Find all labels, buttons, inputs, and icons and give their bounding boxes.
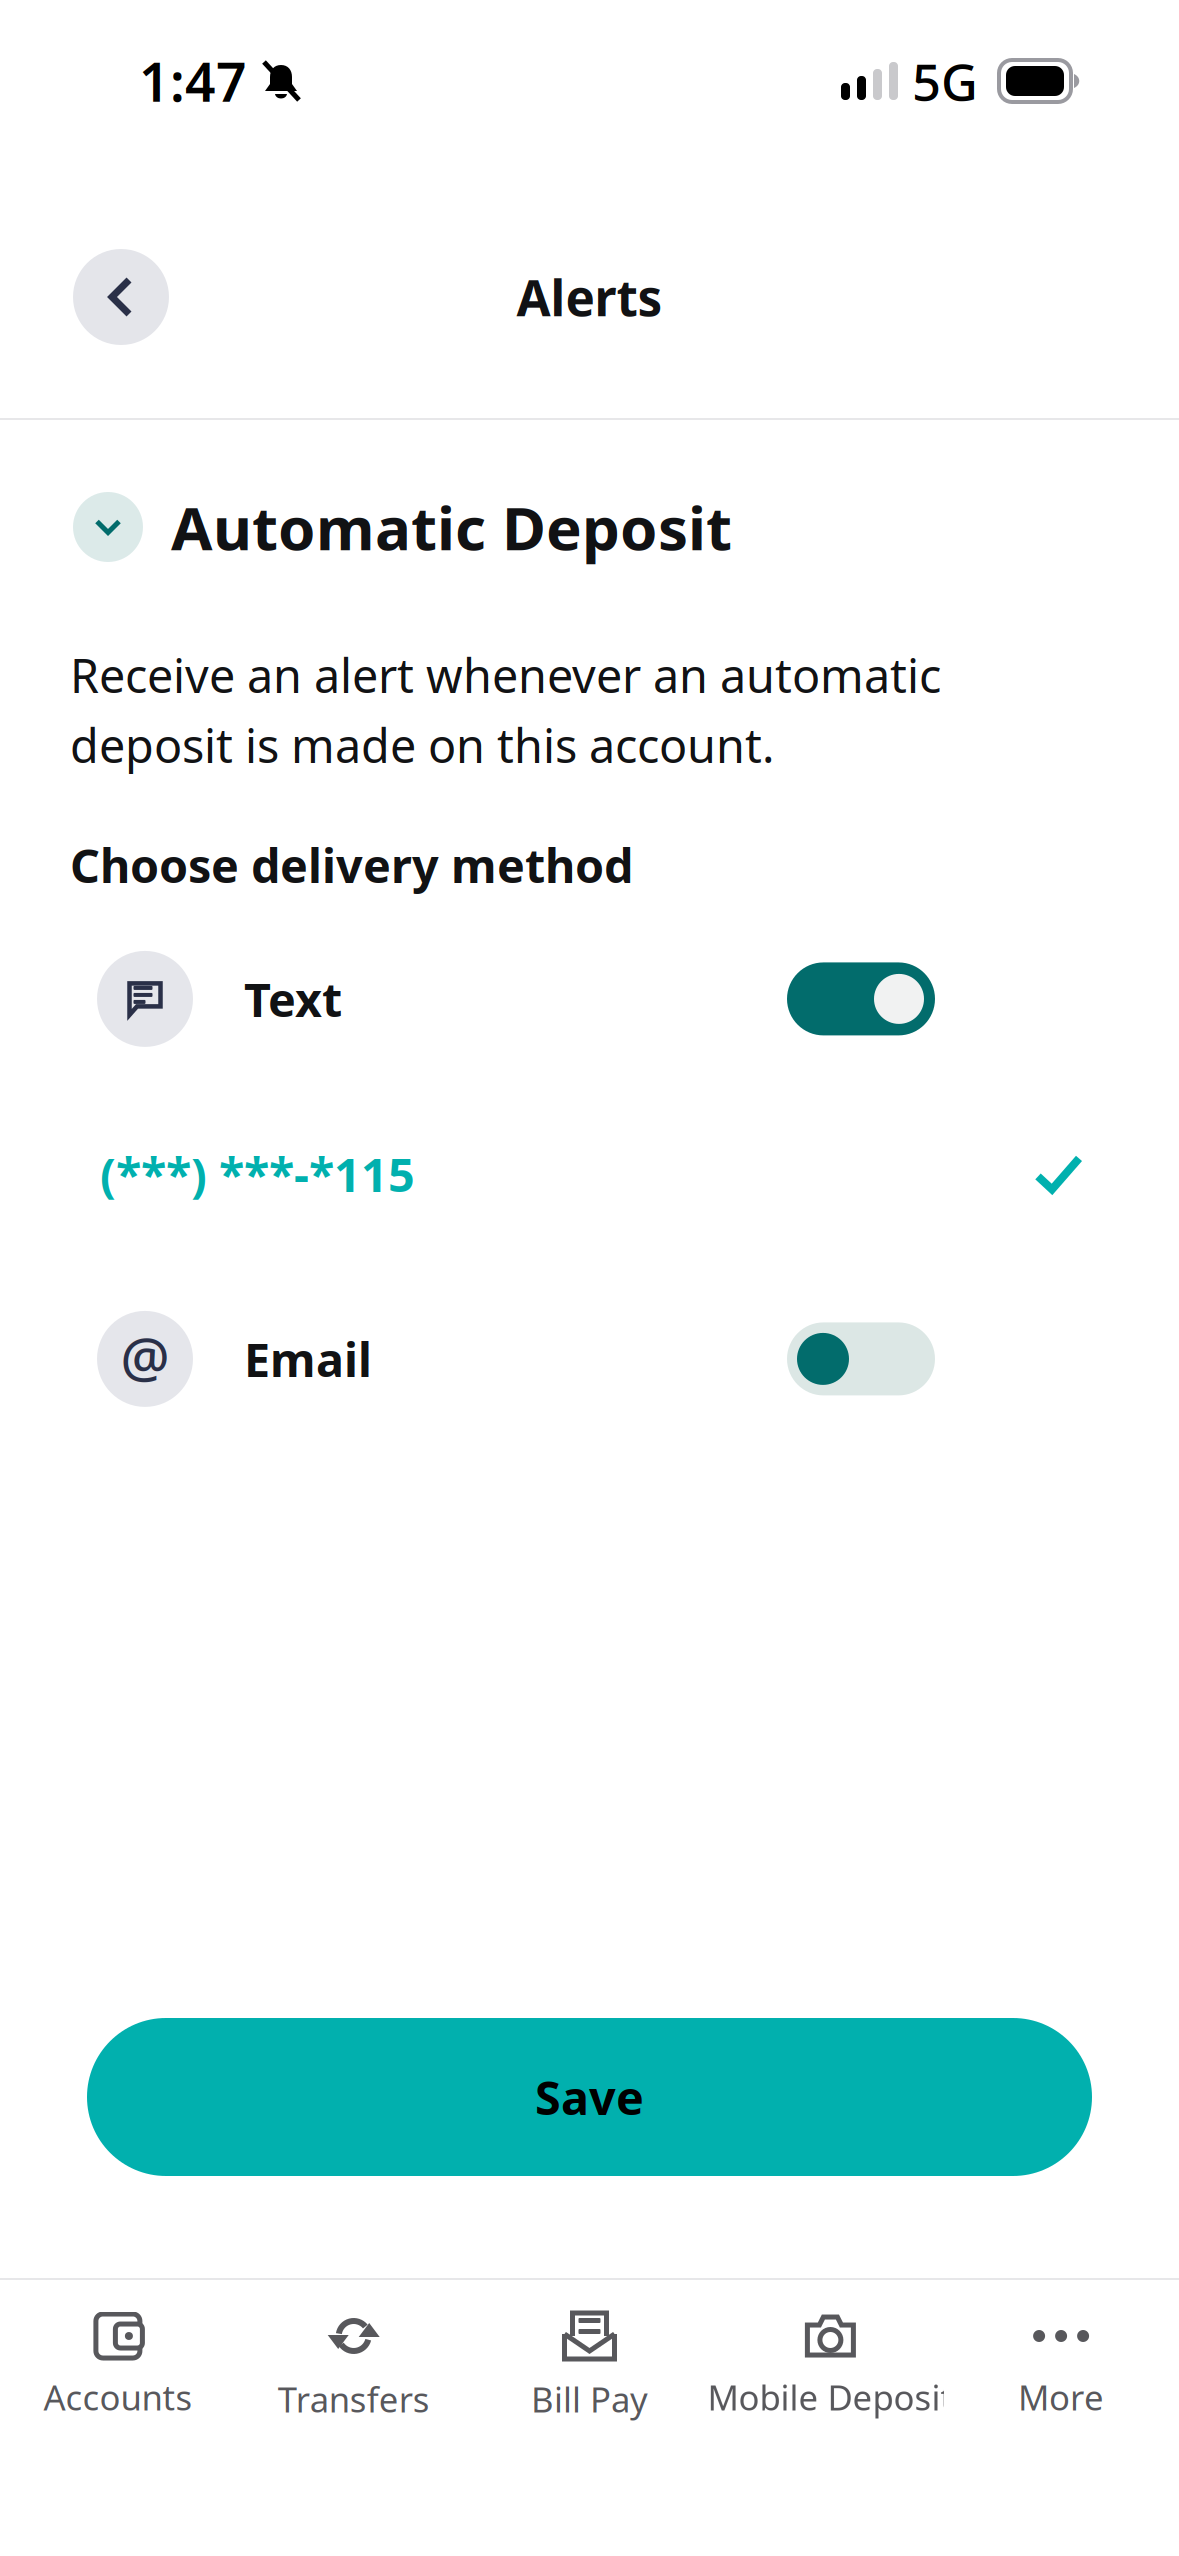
staticText: More [1018,2374,1104,2420]
staticText: Text [244,968,342,1030]
button[interactable]: Accounts [0,2312,236,2420]
staticText: Transfers [278,2376,430,2422]
staticText: Bill Pay [531,2376,648,2422]
staticText: Save [535,2066,644,2128]
staticText: 5G [912,47,978,115]
button[interactable]: Bill Pay [472,2310,707,2422]
staticText: @ [120,1320,169,1392]
staticText: Email [244,1328,372,1390]
button[interactable]: Mobile Deposit [707,2312,943,2420]
button[interactable]: Automatic Deposit [0,492,1179,562]
staticText: Automatic Deposit [171,487,732,567]
button[interactable]: Transfers [236,2310,472,2422]
button[interactable]: More [943,2312,1179,2420]
button[interactable]: (***) ***-*115 [0,1136,1179,1212]
staticText: Choose delivery method [70,834,633,896]
staticText: (***) ***-*115 [100,1143,415,1205]
staticText: Mobile Deposit [707,2374,953,2420]
staticText: Receive an alert whenever an automatic d… [70,644,941,776]
staticText: Alerts [516,264,662,330]
staticText: 1:47 [139,46,247,116]
button[interactable]: Back [73,242,169,338]
staticText: Accounts [43,2374,192,2420]
button[interactable]: Text [0,951,1179,1047]
button[interactable]: Save [0,2018,1179,2176]
button[interactable]: @ [0,1311,1179,1407]
